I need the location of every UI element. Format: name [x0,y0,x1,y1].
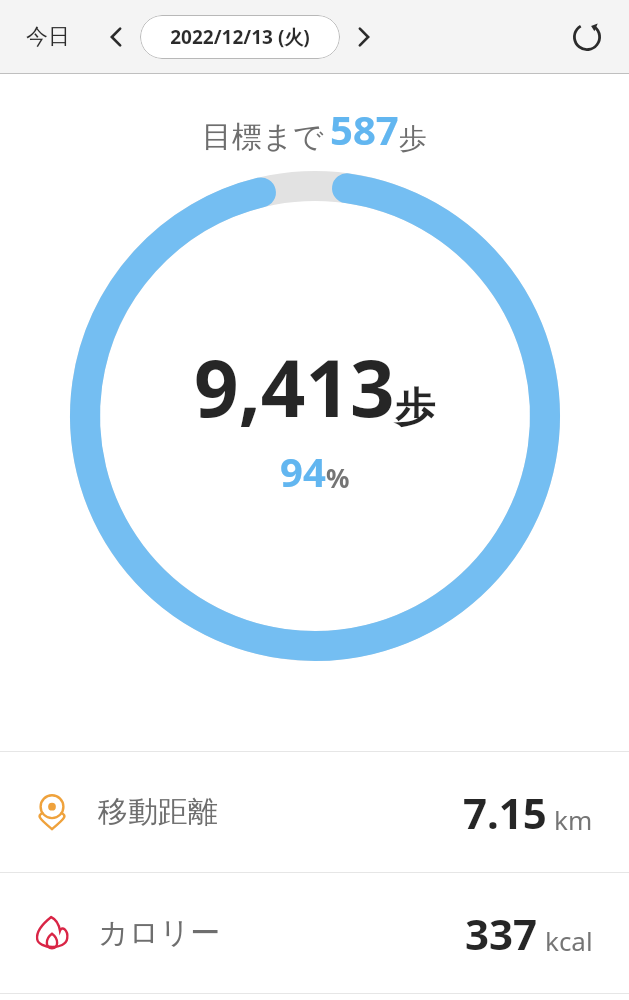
staticText: 587 [330,102,399,156]
staticText: % [326,460,350,495]
staticText: 歩 [399,121,427,156]
button[interactable]: Distance [0,752,629,872]
staticText: 9,413 [194,334,395,440]
button[interactable]: Next day [344,17,384,57]
staticText: 2022/12/13 (火) [170,24,310,50]
staticText: 337 [465,905,538,962]
button[interactable]: Refresh [565,15,609,59]
staticText: 7.15 [463,784,547,841]
other: Calories [32,913,72,953]
staticText: 移動距離 [98,793,218,831]
staticText: カロリー [98,914,221,952]
staticText: 94 [280,444,326,498]
button[interactable]: Calories [0,873,629,993]
button[interactable]: 2022/12/13 (火) [140,15,340,59]
other: Distance [32,792,72,832]
button[interactable]: Previous day [96,17,136,57]
staticText: 目標まで [202,118,324,156]
staticText: km [554,802,593,837]
staticText: kcal [545,923,593,958]
button[interactable]: 今日 [18,17,78,57]
staticText: 今日 [26,23,70,51]
staticText: 歩 [395,382,435,432]
